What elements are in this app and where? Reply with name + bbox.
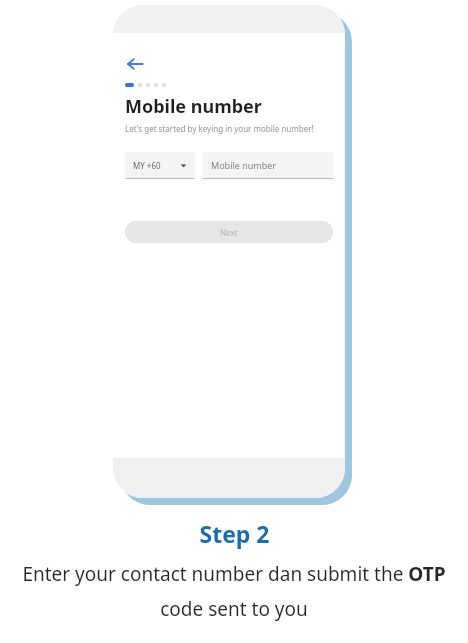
button[interactable]: Mobile number [203, 152, 333, 179]
staticText: Mobile number [211, 159, 277, 171]
staticText: MY +60 [133, 160, 161, 171]
button[interactable]: MY +60 [125, 152, 195, 179]
staticText: Mobile number [125, 94, 262, 119]
button[interactable]: Back [125, 53, 147, 75]
button[interactable]: Next [125, 221, 333, 243]
staticText: Step 2 [199, 518, 270, 549]
staticText: Let's get started by keying in your mobi… [125, 123, 322, 134]
staticText: Enter your contact number dan submit the… [4, 561, 464, 621]
staticText: Next [220, 227, 238, 238]
